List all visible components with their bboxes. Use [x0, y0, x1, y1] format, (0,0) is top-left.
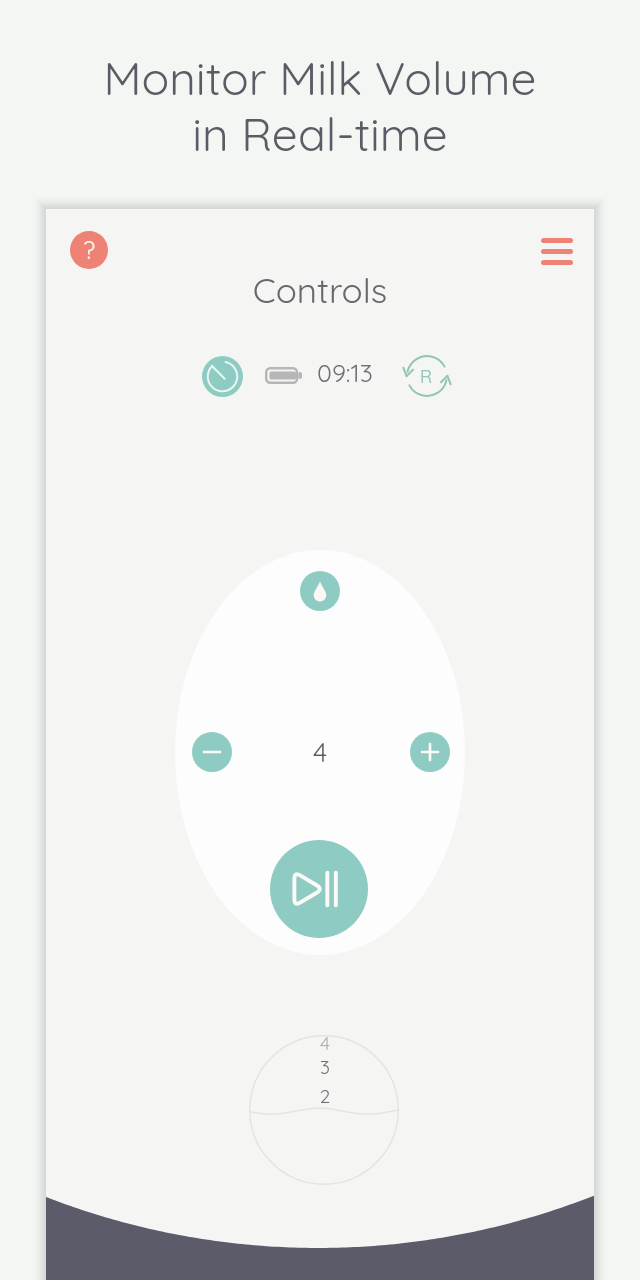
staticText: 4 [250, 1031, 400, 1055]
staticText: 09:13 [317, 357, 373, 388]
staticText: ? [83, 234, 96, 265]
staticText: Monitor Milk Volume [0, 49, 640, 107]
staticText: 4 [46, 735, 594, 769]
button[interactable]: Suction mode [300, 571, 340, 611]
staticText: Controls [46, 268, 594, 312]
staticText: 2 [250, 1084, 400, 1108]
staticText: R [420, 365, 433, 388]
staticText: 3 [250, 1055, 400, 1079]
button[interactable]: Menu [541, 238, 573, 265]
button[interactable]: Increase level [410, 732, 450, 772]
button[interactable]: Play or pause [270, 840, 368, 938]
button[interactable]: Decrease level [192, 732, 232, 772]
staticText: in Real-time [0, 105, 640, 163]
button[interactable]: Help [70, 231, 108, 269]
